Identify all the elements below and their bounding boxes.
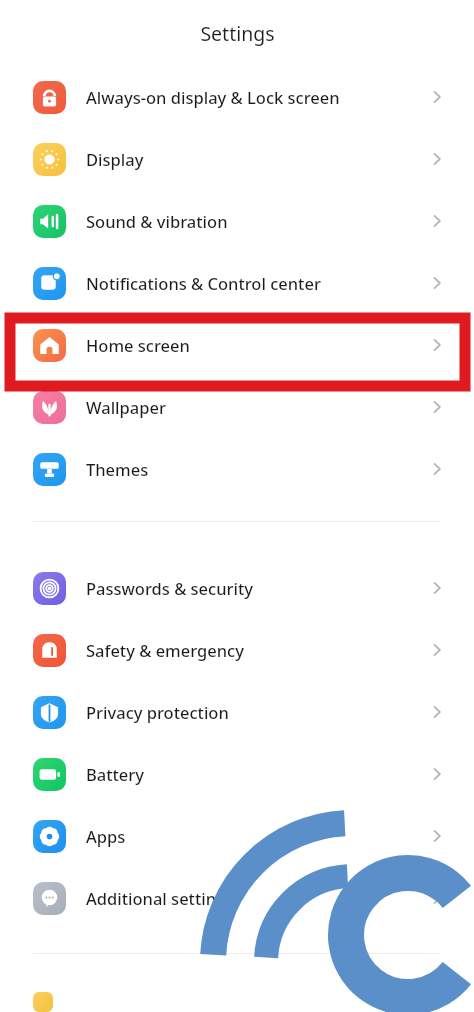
button[interactable]: Themes (0, 438, 474, 500)
staticText: Additional settings (86, 887, 428, 909)
staticText: Home screen (86, 334, 428, 356)
staticText: Notifications & Control center (86, 272, 428, 294)
staticText: Settings (200, 20, 275, 47)
button[interactable]: Additional settings (0, 867, 474, 929)
staticText: Wallpaper (86, 396, 428, 418)
staticText: Apps (86, 825, 428, 847)
button[interactable]: Safety & emergency (0, 619, 474, 681)
button[interactable]: Home screen (0, 314, 474, 376)
staticText: Battery (86, 763, 428, 785)
staticText: Always-on display & Lock screen (86, 86, 428, 108)
button[interactable]: Privacy protection (0, 681, 474, 743)
button[interactable]: Sound & vibration (0, 190, 474, 252)
staticText: Passwords & security (86, 577, 428, 599)
staticText: Sound & vibration (86, 210, 428, 232)
staticText: Display (86, 148, 428, 170)
button[interactable]: Apps (0, 805, 474, 867)
button[interactable]: Wallpaper (0, 376, 474, 438)
button[interactable]: Always-on display & Lock screen (0, 66, 474, 128)
staticText: Safety & emergency (86, 639, 428, 661)
staticText: Themes (86, 458, 428, 480)
button[interactable]: Passwords & security (0, 557, 474, 619)
button[interactable]: Battery (0, 743, 474, 805)
button[interactable]: Display (0, 128, 474, 190)
staticText: Privacy protection (86, 701, 428, 723)
button[interactable]: Notifications & Control center (0, 252, 474, 314)
